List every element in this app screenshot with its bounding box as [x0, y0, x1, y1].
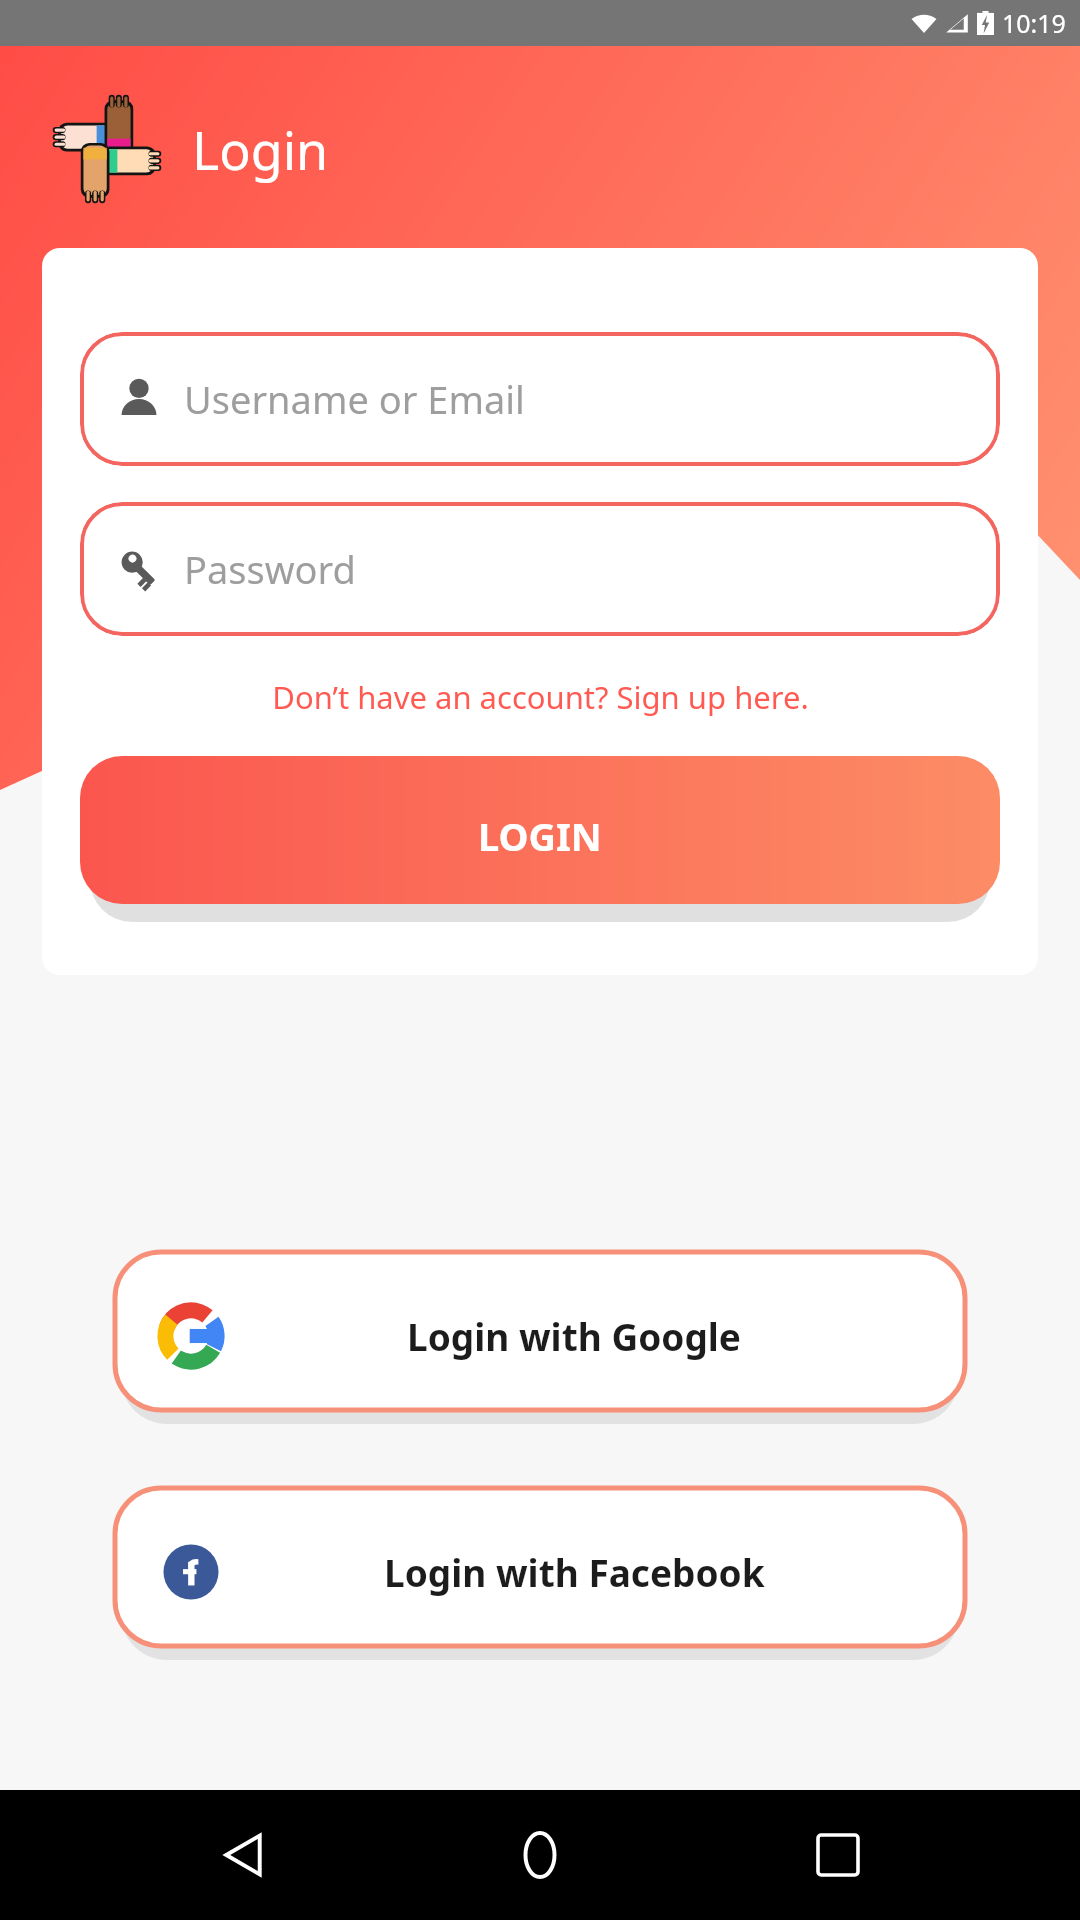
staticText: Login with Facebook	[384, 1547, 765, 1597]
button[interactable]: Back	[188, 1800, 298, 1910]
staticText: 10:19	[1002, 6, 1066, 40]
button[interactable]: Home	[485, 1800, 595, 1910]
button[interactable]: Recents	[783, 1800, 893, 1910]
button[interactable]: Username or Email	[80, 332, 1000, 466]
staticText: Username or Email	[184, 373, 525, 425]
button[interactable]: Password	[80, 502, 1000, 636]
button[interactable]: Don’t have an account? Sign up here.	[80, 676, 1000, 718]
staticText: Don’t have an account? Sign up here.	[272, 676, 809, 718]
button[interactable]: LOGIN	[80, 756, 1000, 916]
staticText: Password	[184, 543, 356, 595]
button[interactable]: Login with Google	[115, 1252, 965, 1420]
button[interactable]: Login with Facebook	[115, 1488, 965, 1656]
staticText: Login with Google	[407, 1311, 741, 1361]
staticText: Login	[192, 114, 329, 185]
staticText: LOGIN	[478, 810, 602, 862]
